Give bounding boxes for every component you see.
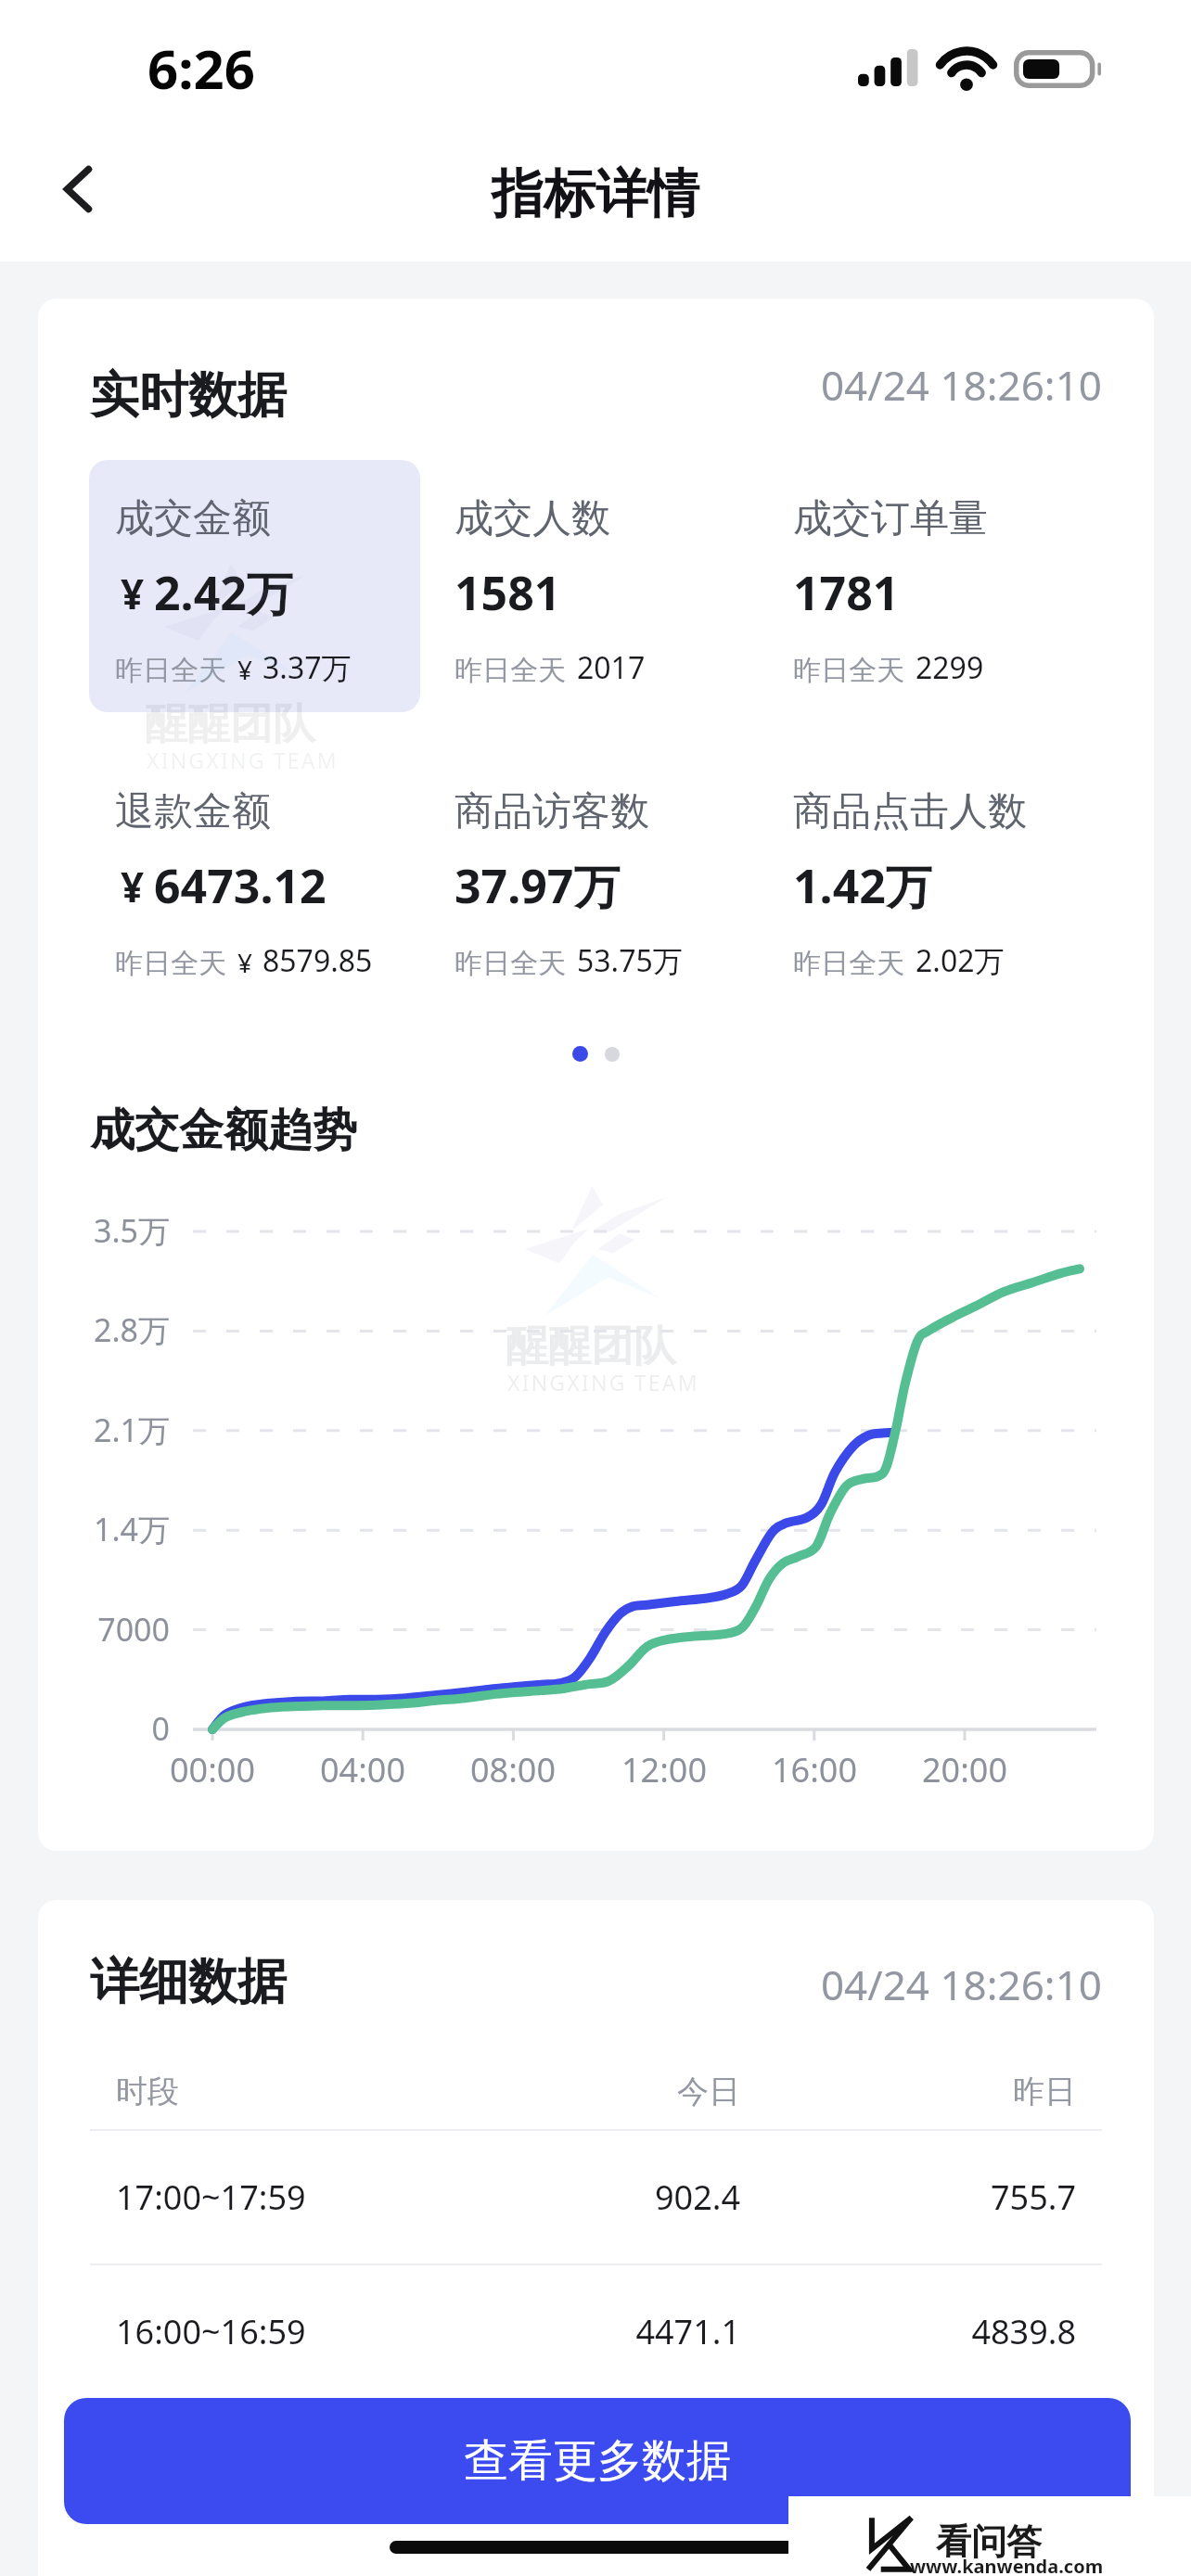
button[interactable]: 成交人数 xyxy=(429,460,760,712)
staticText: 昨日全天 xyxy=(115,653,226,688)
staticText: 2017 xyxy=(577,647,646,688)
staticText: 成交金额 xyxy=(115,494,271,543)
staticText: 04/24 18:26:10 xyxy=(731,357,1102,413)
staticText: 37.97万 xyxy=(455,854,621,917)
staticText: XINGXING TEAM xyxy=(507,1368,699,1396)
button[interactable]: Back xyxy=(24,135,132,243)
staticText: 成交订单量 xyxy=(793,494,988,543)
staticText: 看问答 xyxy=(936,2519,1042,2564)
staticText: 商品点击人数 xyxy=(793,787,1027,836)
staticText: 成交人数 xyxy=(455,494,610,543)
staticText: 17:00~17:59 xyxy=(116,2174,306,2220)
staticText: 3.5万 xyxy=(38,1209,170,1252)
staticText: 2.42万 xyxy=(154,561,293,624)
staticText: 昨日 xyxy=(798,2072,1076,2111)
button[interactable]: 商品访客数 xyxy=(429,753,760,1005)
staticText: 20:00 xyxy=(881,1747,1048,1792)
staticText: XINGXING TEAM xyxy=(147,746,339,774)
staticText: 退款金额 xyxy=(115,787,271,836)
staticText: 0 xyxy=(38,1707,170,1750)
staticText: 04:00 xyxy=(279,1747,446,1792)
staticText: 1781 xyxy=(793,561,900,624)
staticText: 商品访客数 xyxy=(455,787,649,836)
staticText: 醒醒团队 xyxy=(145,697,315,751)
button[interactable]: 查看更多数据 xyxy=(64,2398,1131,2524)
button[interactable]: 成交订单量 xyxy=(767,460,1098,712)
staticText: 7000 xyxy=(38,1608,170,1651)
staticText: 8579.85 xyxy=(263,940,373,981)
staticText: 醒醒团队 xyxy=(506,1320,676,1373)
button[interactable]: 退款金额 xyxy=(89,753,420,1005)
staticText: 04/24 18:26:10 xyxy=(731,1957,1102,2012)
staticText: 08:00 xyxy=(429,1747,596,1792)
staticText: www.kanwenda.com xyxy=(910,2554,1104,2576)
staticText: ¥ xyxy=(237,945,253,980)
button[interactable]: Page 2 xyxy=(605,1047,620,1062)
button[interactable]: 商品点击人数 xyxy=(767,753,1098,1005)
staticText: 2.8万 xyxy=(38,1308,170,1351)
staticText: 2.02万 xyxy=(916,940,1005,981)
staticText: 16:00~16:59 xyxy=(116,2309,306,2354)
staticText: 53.75万 xyxy=(577,940,683,981)
staticText: 查看更多数据 xyxy=(464,2433,731,2489)
staticText: 12:00 xyxy=(581,1747,748,1792)
staticText: 4839.8 xyxy=(761,2309,1076,2354)
staticText: 902.4 xyxy=(425,2174,740,2220)
button[interactable]: Page 1 xyxy=(572,1046,588,1062)
staticText: ¥ xyxy=(237,652,253,687)
staticText: 详细数据 xyxy=(90,1951,287,2013)
staticText: ¥ xyxy=(121,859,145,914)
button[interactable]: 16:00~16:59 xyxy=(38,2276,1154,2389)
staticText: 实时数据 xyxy=(90,364,287,427)
button[interactable]: 17:00~17:59 xyxy=(38,2141,1154,2254)
staticText: 2299 xyxy=(916,647,984,688)
button[interactable]: 成交金额 xyxy=(89,460,420,712)
staticText: 6:26 xyxy=(147,32,255,105)
staticText: 2.1万 xyxy=(38,1409,170,1451)
staticText: 6473.12 xyxy=(154,854,327,917)
staticText: 昨日全天 xyxy=(793,653,904,688)
staticText: 4471.1 xyxy=(425,2309,740,2354)
staticText: 昨日全天 xyxy=(455,946,566,981)
staticText: 成交金额趋势 xyxy=(90,1103,357,1158)
staticText: 昨日全天 xyxy=(115,946,226,981)
staticText: 1581 xyxy=(455,561,561,624)
staticText: 1.42万 xyxy=(793,854,932,917)
staticText: 昨日全天 xyxy=(455,653,566,688)
staticText: 3.37万 xyxy=(263,647,352,688)
staticText: 昨日全天 xyxy=(793,946,904,981)
staticText: 755.7 xyxy=(761,2174,1076,2220)
staticText: 1.4万 xyxy=(38,1508,170,1550)
staticText: 指标详情 xyxy=(492,161,699,227)
staticText: 16:00 xyxy=(731,1747,898,1792)
staticText: ¥ xyxy=(121,566,145,621)
staticText: 00:00 xyxy=(129,1747,296,1792)
staticText: 今日 xyxy=(462,2072,740,2111)
staticText: 时段 xyxy=(116,2072,179,2111)
